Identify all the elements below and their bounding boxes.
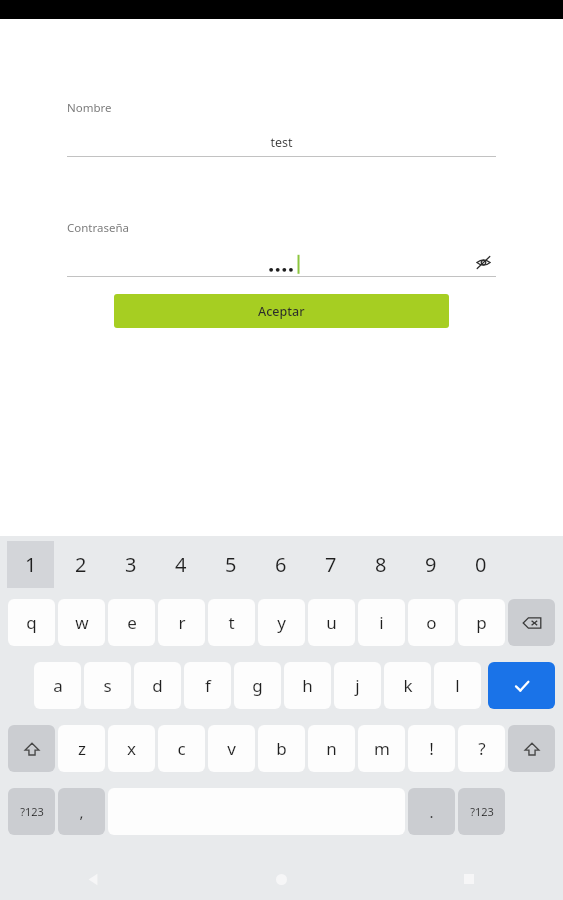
button[interactable]: Contraseña [67, 220, 563, 236]
staticText: a [53, 674, 63, 697]
button[interactable]: s [84, 662, 131, 709]
button[interactable]: 2 [57, 541, 104, 588]
staticText: 2 [75, 551, 87, 578]
staticText: i [379, 611, 384, 634]
button[interactable]: Nombre [67, 100, 563, 116]
staticText: s [103, 674, 112, 697]
staticText: n [326, 737, 337, 760]
staticText: b [276, 737, 287, 760]
staticText: 0 [475, 551, 487, 578]
button[interactable]: y [258, 599, 305, 646]
button[interactable]: d [134, 662, 181, 709]
button[interactable]: 4 [157, 541, 204, 588]
staticText: Nombre [67, 100, 112, 116]
button[interactable]: ? [458, 725, 505, 772]
button[interactable]: a [34, 662, 81, 709]
button[interactable]: ?123 [458, 788, 505, 835]
staticText: j [355, 674, 360, 697]
staticText: Contraseña [67, 220, 130, 236]
button[interactable]: 8 [357, 541, 404, 588]
staticText: 8 [375, 551, 387, 578]
button[interactable]: test [67, 128, 496, 156]
staticText: ? [478, 737, 486, 760]
button[interactable]: z [58, 725, 105, 772]
staticText: m [374, 737, 390, 760]
staticText: 4 [175, 551, 187, 578]
button[interactable]: t [208, 599, 255, 646]
button[interactable]: i [358, 599, 405, 646]
staticText: ?123 [470, 804, 494, 819]
staticText: p [476, 611, 487, 634]
button[interactable]: Aceptar [488, 662, 555, 709]
staticText: . [429, 802, 434, 822]
button[interactable]: q [8, 599, 55, 646]
button[interactable]: u [308, 599, 355, 646]
button[interactable]: p [458, 599, 505, 646]
staticText: t [228, 611, 235, 634]
staticText: c [177, 737, 186, 760]
button[interactable]: . [408, 788, 455, 835]
button[interactable]: 7 [307, 541, 354, 588]
staticText: 6 [275, 551, 287, 578]
staticText: g [252, 674, 263, 697]
button[interactable]: ! [408, 725, 455, 772]
staticText: h [302, 674, 313, 697]
button[interactable]: Mayúsculas [508, 725, 555, 772]
staticText: e [127, 611, 137, 634]
button[interactable]: j [334, 662, 381, 709]
staticText: 5 [225, 551, 237, 578]
button[interactable]: e [108, 599, 155, 646]
button[interactable]: 5 [207, 541, 254, 588]
button[interactable]: o [408, 599, 455, 646]
staticText: u [326, 611, 337, 634]
staticText: ! [429, 737, 434, 760]
staticText: y [277, 611, 286, 634]
staticText: Aceptar [258, 303, 305, 320]
button[interactable]: Mostrar contraseña [67, 248, 496, 276]
button[interactable]: h [284, 662, 331, 709]
button[interactable]: m [358, 725, 405, 772]
staticText: x [127, 737, 136, 760]
staticText: ?123 [20, 804, 44, 819]
button[interactable]: Retroceso [508, 599, 555, 646]
button[interactable]: b [258, 725, 305, 772]
button[interactable]: n [308, 725, 355, 772]
staticText: o [426, 611, 437, 634]
button[interactable]: Aceptar [114, 294, 449, 328]
staticText: z [78, 737, 86, 760]
button[interactable]: x [108, 725, 155, 772]
button[interactable]: 0 [457, 541, 504, 588]
button[interactable]: 9 [407, 541, 454, 588]
button[interactable]: 3 [107, 541, 154, 588]
button[interactable]: k [384, 662, 431, 709]
staticText: 7 [325, 551, 337, 578]
button[interactable]: 1 [7, 541, 54, 588]
staticText: , [79, 802, 84, 822]
staticText: q [26, 611, 37, 634]
staticText: 1 [25, 551, 37, 578]
button[interactable]: f [184, 662, 231, 709]
button[interactable]: 6 [257, 541, 304, 588]
staticText: 9 [425, 551, 437, 578]
button[interactable]: Mayúsculas [8, 725, 55, 772]
staticText: f [205, 674, 211, 697]
staticText: d [152, 674, 163, 697]
button[interactable]: w [58, 599, 105, 646]
staticText: r [178, 611, 186, 634]
button[interactable]: c [158, 725, 205, 772]
button[interactable]: g [234, 662, 281, 709]
button[interactable]: Mostrar contraseña [470, 249, 496, 275]
button[interactable]: ?123 [8, 788, 55, 835]
button[interactable]: v [208, 725, 255, 772]
button[interactable]: l [434, 662, 481, 709]
staticText: test [270, 134, 293, 151]
staticText: 3 [125, 551, 137, 578]
staticText: v [227, 737, 236, 760]
button[interactable]: r [158, 599, 205, 646]
button[interactable]: , [58, 788, 105, 835]
staticText: l [455, 674, 460, 697]
